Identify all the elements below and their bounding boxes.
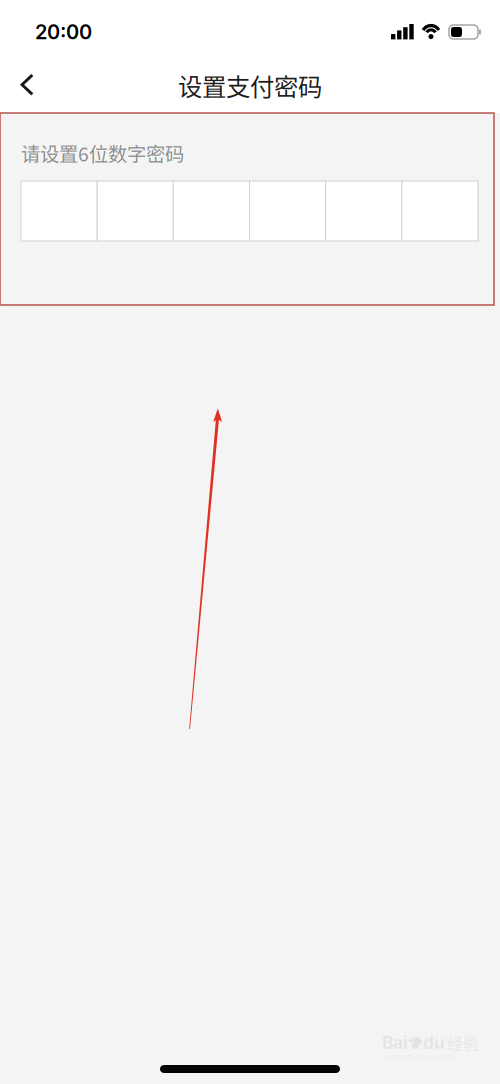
staticText: 设置支付密码	[178, 67, 322, 103]
staticText: 20:00	[35, 20, 92, 44]
button[interactable]: Password digit	[402, 181, 478, 241]
staticText: 经验	[447, 1031, 479, 1054]
button[interactable]: Password digit	[21, 181, 97, 241]
button[interactable]: Password digit	[249, 181, 326, 241]
staticText: 请设置6位数字密码	[21, 139, 184, 167]
button[interactable]: Password digit	[97, 181, 173, 241]
staticText: Bai	[382, 1032, 408, 1053]
button[interactable]: Password digit	[326, 181, 402, 241]
staticText: du	[423, 1032, 445, 1053]
button[interactable]: Back	[5, 61, 49, 109]
button[interactable]: Password digit	[173, 181, 249, 241]
